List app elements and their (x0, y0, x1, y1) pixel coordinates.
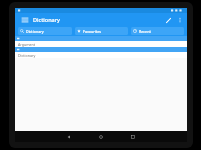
button[interactable]: More options (175, 15, 185, 25)
button[interactable]: Dictionary (15, 52, 187, 58)
button[interactable]: Home (96, 132, 106, 142)
staticText: Dictionary (33, 16, 60, 23)
staticText: Dictionary (26, 29, 44, 34)
staticText: Recent (139, 29, 151, 34)
button[interactable]: Favourites (75, 27, 128, 35)
button[interactable] (15, 47, 187, 52)
button[interactable]: Recent apps (128, 132, 138, 142)
button[interactable]: Navigation menu (19, 14, 30, 25)
button[interactable]: Recent (131, 27, 184, 35)
button[interactable]: Dictionary (18, 27, 72, 35)
button[interactable]: Back (64, 132, 74, 142)
staticText: Argument (18, 42, 36, 47)
button[interactable]: Edit (162, 14, 174, 26)
button[interactable]: Argument (15, 41, 187, 47)
button[interactable] (15, 36, 187, 41)
staticText: Dictionary (18, 53, 36, 58)
staticText: Favourites (83, 29, 101, 34)
